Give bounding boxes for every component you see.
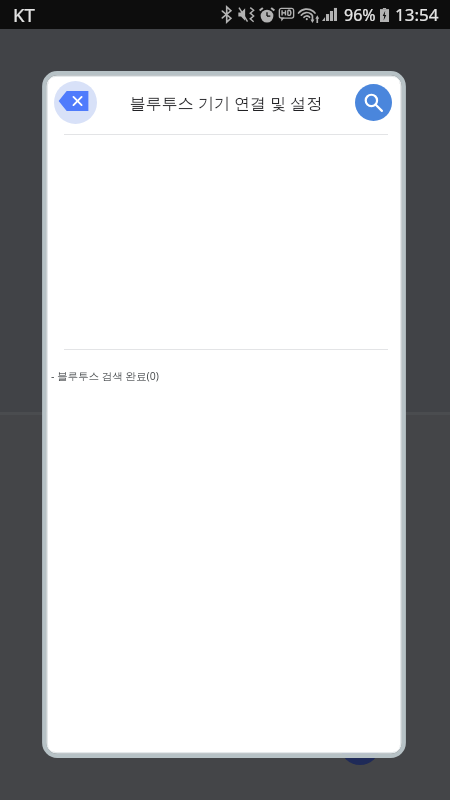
staticText: 13:54 (395, 3, 439, 26)
button[interactable]: Add device (340, 725, 380, 765)
button[interactable]: Search (355, 84, 392, 121)
staticText: 블루투스 기기 연결 및 설정 (97, 92, 355, 114)
button[interactable]: Back (54, 81, 97, 124)
staticText: 96% (344, 4, 376, 26)
staticText: - 블루투스 검색 완료(0) (51, 369, 159, 383)
staticText: KT (13, 2, 35, 27)
